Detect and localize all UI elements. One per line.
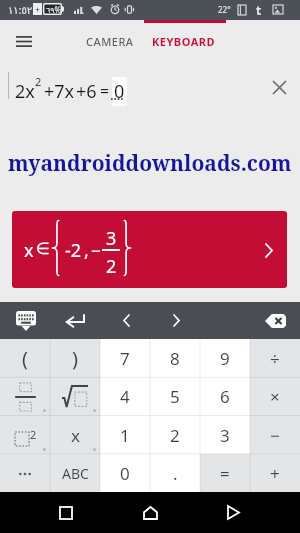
staticText: 2 bbox=[170, 424, 180, 447]
staticText: ٦٩% bbox=[46, 4, 62, 15]
button[interactable]: 9 bbox=[200, 339, 250, 378]
staticText: = bbox=[100, 80, 110, 102]
staticText: + bbox=[35, 3, 41, 15]
staticText: ∈ bbox=[36, 239, 50, 258]
button[interactable]: ) bbox=[50, 339, 100, 378]
staticText: 3 bbox=[220, 424, 230, 447]
staticText: t bbox=[256, 2, 262, 18]
button[interactable]: 2 bbox=[0, 416, 50, 455]
staticText: 7 bbox=[120, 347, 130, 370]
button[interactable]: ABC bbox=[50, 454, 100, 493]
button[interactable] bbox=[0, 377, 50, 416]
staticText: +7x bbox=[44, 79, 75, 104]
staticText: − bbox=[270, 424, 280, 447]
staticText: 9 bbox=[220, 347, 230, 370]
staticText: 2 bbox=[30, 427, 37, 442]
staticText: 5 bbox=[170, 385, 180, 408]
staticText: 22° bbox=[218, 4, 231, 15]
staticText: -2 bbox=[65, 238, 82, 263]
staticText: x bbox=[71, 424, 80, 447]
staticText: ( bbox=[22, 345, 28, 372]
staticText: ÷ bbox=[270, 347, 280, 370]
staticText: myandroiddownloads.com bbox=[8, 149, 292, 177]
staticText: . bbox=[173, 462, 178, 485]
button[interactable]: 0 bbox=[100, 454, 150, 493]
staticText: + bbox=[270, 462, 280, 485]
button[interactable]: . bbox=[150, 454, 200, 493]
button[interactable]: Enter bbox=[53, 302, 97, 339]
button[interactable]: Recent apps bbox=[46, 492, 86, 533]
button[interactable]: 1 bbox=[100, 416, 150, 455]
button[interactable]: x bbox=[50, 416, 100, 455]
button[interactable] bbox=[0, 454, 50, 493]
staticText: 0 bbox=[120, 462, 130, 485]
button[interactable]: Clear expression bbox=[265, 73, 293, 101]
button[interactable]: 5 bbox=[150, 377, 200, 416]
button[interactable]: = bbox=[200, 454, 250, 493]
button[interactable]: CAMERA bbox=[82, 26, 138, 57]
staticText: 0 bbox=[114, 79, 125, 104]
button[interactable]: ÷ bbox=[250, 339, 300, 378]
staticText: 8 bbox=[170, 347, 180, 370]
staticText: , bbox=[84, 238, 89, 263]
button[interactable]: Hide keyboard bbox=[4, 302, 48, 339]
staticText: KEYBOARD bbox=[152, 34, 216, 49]
staticText: − bbox=[91, 239, 101, 262]
staticText: +6 bbox=[76, 79, 97, 104]
button[interactable]: × bbox=[250, 377, 300, 416]
staticText: 3 bbox=[106, 226, 117, 251]
button[interactable]: Show solution steps bbox=[257, 238, 281, 262]
staticText: 2x bbox=[15, 79, 35, 104]
button[interactable] bbox=[50, 377, 100, 416]
staticText: ABC bbox=[62, 464, 89, 483]
button[interactable]: − bbox=[250, 416, 300, 455]
staticText: ١١:٥٢ bbox=[8, 3, 33, 17]
staticText: CAMERA bbox=[86, 34, 134, 49]
button[interactable]: Backspace bbox=[253, 302, 297, 339]
button[interactable]: Move right bbox=[154, 302, 198, 339]
button[interactable]: KEYBOARD bbox=[148, 26, 220, 57]
button[interactable]: 2 bbox=[150, 416, 200, 455]
button[interactable]: 4 bbox=[100, 377, 150, 416]
button[interactable]: 3 bbox=[200, 416, 250, 455]
button[interactable]: 6 bbox=[200, 377, 250, 416]
button[interactable]: Menu bbox=[8, 25, 40, 57]
button[interactable]: Back bbox=[213, 492, 253, 533]
button[interactable]: 8 bbox=[150, 339, 200, 378]
button[interactable]: Home bbox=[130, 492, 170, 533]
staticText: 2 bbox=[35, 74, 42, 89]
staticText: 2 bbox=[106, 254, 117, 279]
staticText: 4 bbox=[120, 385, 130, 408]
button[interactable]: + bbox=[250, 454, 300, 493]
button[interactable]: ( bbox=[0, 339, 50, 378]
staticText: = bbox=[220, 462, 230, 485]
staticText: ) bbox=[72, 345, 78, 372]
staticText: × bbox=[270, 385, 280, 408]
button[interactable]: x bbox=[12, 211, 287, 288]
staticText: 1 bbox=[120, 424, 130, 447]
staticText: x bbox=[24, 238, 34, 263]
staticText: 6 bbox=[220, 385, 230, 408]
button[interactable]: 7 bbox=[100, 339, 150, 378]
button[interactable]: Move left bbox=[104, 302, 148, 339]
